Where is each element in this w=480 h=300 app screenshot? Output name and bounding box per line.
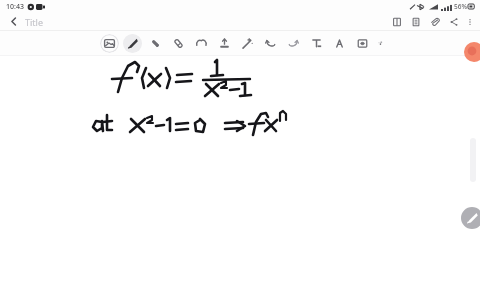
button[interactable]: Resize	[353, 34, 372, 53]
button[interactable]: Share	[446, 14, 462, 30]
staticText: Title	[25, 16, 43, 28]
button[interactable]: Effects	[376, 34, 384, 53]
staticText: 56%	[454, 2, 467, 11]
button[interactable]: Insert image	[100, 34, 119, 53]
button[interactable]: Text	[307, 34, 326, 53]
button[interactable]: Pen	[123, 34, 142, 53]
button[interactable]: Edit	[461, 207, 480, 229]
button[interactable]: Collaborator	[464, 42, 480, 62]
button[interactable]: Back	[5, 13, 22, 30]
button[interactable]: Notes	[408, 14, 424, 30]
staticText: 10:43	[6, 2, 24, 12]
button[interactable]: Insert	[215, 34, 234, 53]
button[interactable]: Attach	[427, 14, 443, 30]
button[interactable]: Highlighter	[146, 34, 165, 53]
button[interactable]: More options	[463, 15, 477, 29]
button[interactable]: Redo	[284, 34, 303, 53]
button[interactable]: Eraser	[169, 34, 188, 53]
button[interactable]: Font	[330, 34, 349, 53]
button[interactable]: Split view	[389, 14, 405, 30]
button[interactable]: Title	[25, 16, 43, 28]
button[interactable]: Lasso select	[192, 34, 211, 53]
button[interactable]: Magic tool	[238, 34, 257, 53]
button[interactable]: Undo	[261, 34, 280, 53]
